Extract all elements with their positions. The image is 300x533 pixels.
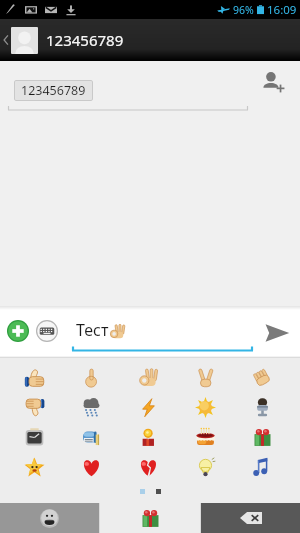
button[interactable]: bulb	[177, 452, 234, 482]
button[interactable]: candle	[120, 422, 177, 452]
button[interactable]: rain	[63, 392, 120, 422]
button[interactable]: Smileys	[0, 503, 99, 533]
button[interactable]: gift	[234, 422, 291, 452]
button[interactable]: thumbdown	[6, 392, 63, 422]
staticText: 96%	[233, 3, 254, 17]
button[interactable]: heart	[63, 452, 120, 482]
button[interactable]: bolt	[120, 392, 177, 422]
button[interactable]: mic	[234, 392, 291, 422]
button[interactable]: point	[63, 362, 120, 392]
button[interactable]: photo	[6, 422, 63, 452]
button[interactable]: brokenheart	[120, 452, 177, 482]
button[interactable]: wave	[234, 362, 291, 392]
button[interactable]: star	[6, 452, 63, 482]
button[interactable]: Send	[262, 318, 292, 348]
button[interactable]: Add contact	[258, 67, 288, 97]
staticText: 123456789	[46, 30, 124, 50]
button[interactable]: Add attachment	[6, 319, 30, 343]
button[interactable]: victory	[177, 362, 234, 392]
button[interactable]: sun	[177, 392, 234, 422]
button[interactable]: note	[234, 452, 291, 482]
button[interactable]: ok	[120, 362, 177, 392]
button[interactable]: thumbup	[6, 362, 63, 392]
button[interactable]: Gifts	[100, 503, 200, 533]
staticText: 16:09	[267, 2, 297, 18]
button[interactable]: Keyboard	[35, 319, 59, 343]
staticText: 123456789	[21, 82, 86, 99]
button[interactable]: Back	[0, 19, 11, 61]
button[interactable]: mailbox	[63, 422, 120, 452]
button[interactable]: Backspace	[201, 503, 300, 533]
button[interactable]: 123456789	[14, 80, 93, 101]
button[interactable]: cake	[177, 422, 234, 452]
staticText: Тест	[76, 319, 109, 341]
